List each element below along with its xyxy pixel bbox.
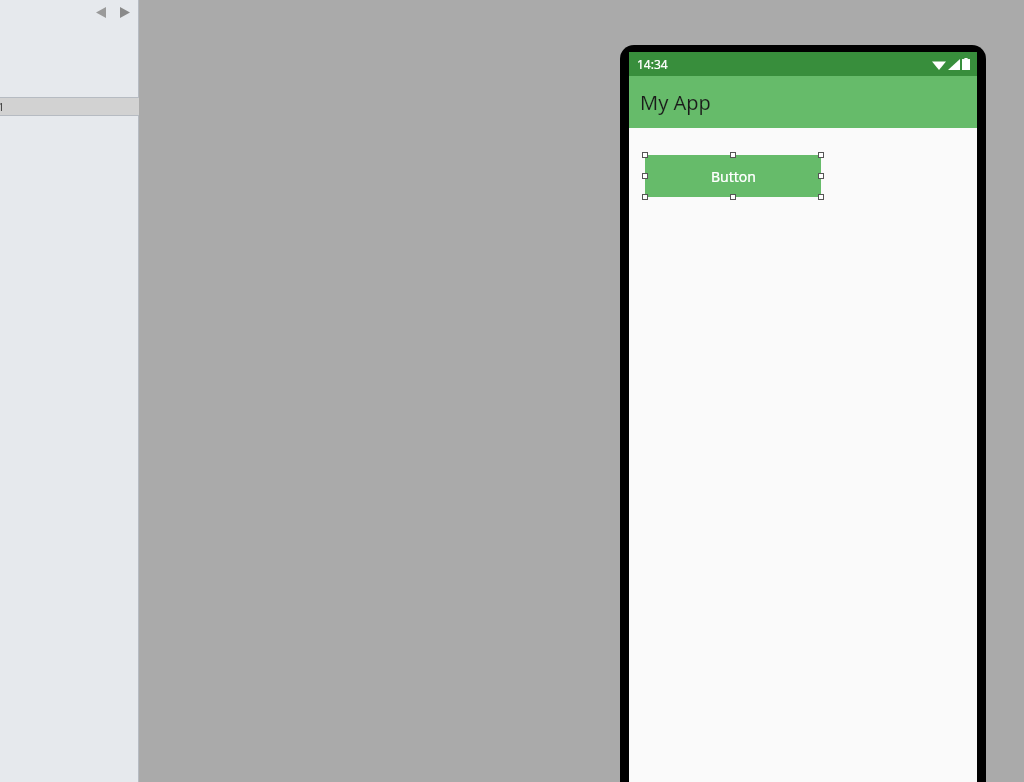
staticText: My App bbox=[640, 89, 711, 116]
button[interactable]: Button bbox=[645, 155, 821, 197]
button[interactable]: 1 bbox=[0, 98, 139, 115]
staticText: Button bbox=[711, 167, 756, 186]
staticText: 14:34 bbox=[637, 56, 668, 72]
button[interactable]: Next bbox=[116, 3, 134, 21]
button[interactable]: Previous bbox=[92, 3, 110, 21]
staticText: 1 bbox=[0, 99, 5, 114]
